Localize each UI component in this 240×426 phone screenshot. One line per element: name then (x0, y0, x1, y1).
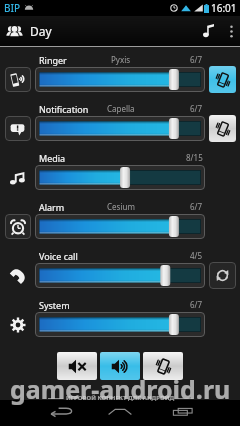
staticText: 4/5 (190, 250, 203, 261)
button[interactable] (35, 263, 205, 288)
button[interactable]: More options (222, 16, 240, 46)
staticText: Cesium (107, 201, 135, 212)
staticText: Media (39, 152, 66, 164)
button[interactable]: Silent (57, 352, 97, 380)
staticText: Voice call (39, 250, 78, 262)
button[interactable] (35, 116, 205, 141)
staticText: 8/15 (186, 152, 203, 163)
button[interactable]: Sound on (100, 352, 140, 380)
button[interactable]: Home (104, 404, 136, 418)
button[interactable]: Media (5, 165, 31, 190)
staticText: gamer-android.ru (10, 372, 231, 406)
button[interactable]: Vibrate (209, 66, 236, 93)
staticText: Day (30, 23, 52, 39)
button[interactable]: Day (0, 16, 60, 46)
button[interactable] (35, 312, 205, 337)
button[interactable]: Alarm (5, 214, 31, 239)
button[interactable]: Recent apps (167, 404, 199, 418)
staticText: System (39, 299, 70, 311)
staticText: 6/7 (190, 54, 203, 65)
button[interactable] (35, 165, 205, 190)
button[interactable]: Vibrate (209, 115, 236, 142)
staticText: Ringer (39, 54, 67, 66)
staticText: ИГРОВОЙ КОННЕКТ ДЛЯ АНДРОИД (66, 394, 175, 402)
staticText: Alarm (39, 201, 65, 213)
staticText: 6/7 (190, 103, 203, 114)
staticText: Pyxis (111, 54, 131, 65)
button[interactable]: Ringer (5, 67, 31, 92)
button[interactable] (35, 214, 205, 239)
staticText: Capella (107, 103, 135, 114)
button[interactable]: Notification (5, 116, 31, 141)
button[interactable]: Vibrate (143, 352, 183, 380)
staticText: 6/7 (190, 299, 203, 310)
button[interactable] (35, 67, 205, 92)
button[interactable]: Sound profile (194, 16, 222, 46)
button[interactable]: System (5, 312, 31, 337)
staticText: 16:01 (211, 1, 237, 15)
button[interactable]: Back (44, 404, 76, 418)
staticText: 6/7 (190, 201, 203, 212)
button[interactable]: Voice call (5, 263, 31, 288)
button[interactable]: Link volumes (209, 262, 236, 289)
staticText: Notification (39, 103, 89, 115)
staticText: BIP (4, 1, 21, 15)
